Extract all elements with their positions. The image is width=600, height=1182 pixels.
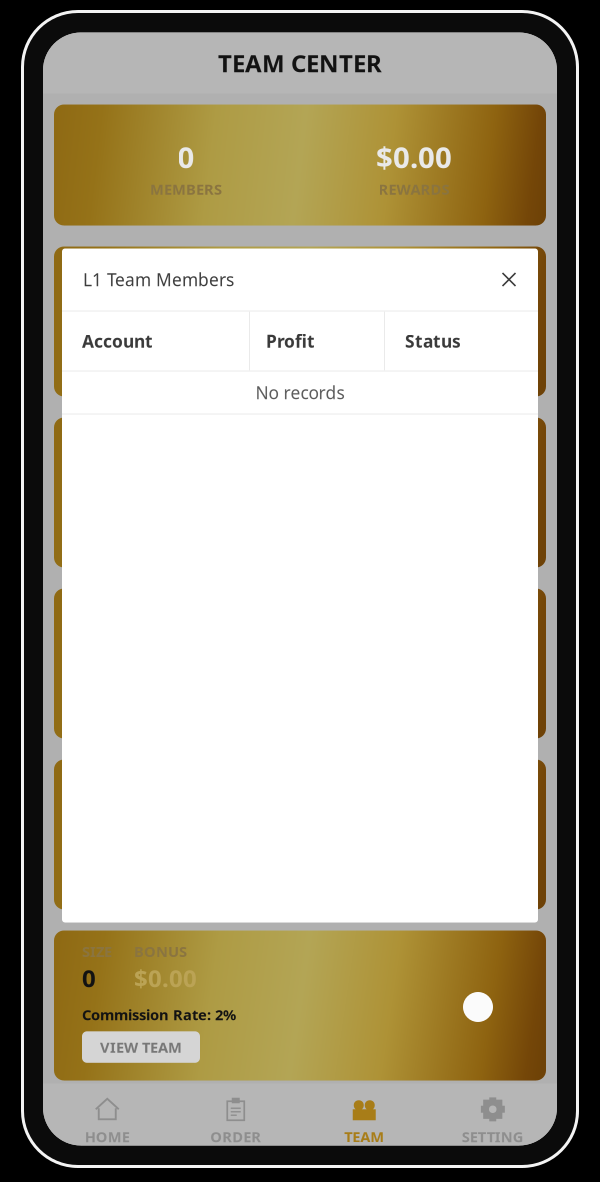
staticText: HOME <box>85 1127 130 1146</box>
staticText: SETTING <box>462 1127 524 1146</box>
staticText: TEAM CENTER <box>218 47 382 79</box>
staticText: VIEW TEAM <box>100 1037 182 1057</box>
button[interactable]: Close <box>491 261 527 297</box>
staticText: BONUS <box>134 257 187 277</box>
staticText: TEAM <box>344 1127 384 1146</box>
staticText: BONUS <box>134 941 187 961</box>
staticText: MEMBERS <box>150 179 222 199</box>
staticText: $0.00 <box>134 962 197 994</box>
staticText: Profit <box>266 329 315 352</box>
staticText: 0 <box>82 962 96 994</box>
staticText: Status <box>405 329 461 352</box>
staticText: Account <box>82 329 153 352</box>
staticText: Commission Rate: 2% <box>82 1005 236 1024</box>
staticText: $0.00 <box>376 137 452 176</box>
staticText: ORDER <box>210 1127 261 1146</box>
staticText: VIEW TEAM <box>100 353 182 373</box>
staticText: 0 <box>82 278 96 310</box>
staticText: 0 <box>177 137 194 176</box>
staticText: No records <box>255 381 344 404</box>
button[interactable]: VIEW TEAM <box>82 347 200 379</box>
staticText: L1 Team Members <box>83 268 234 291</box>
staticText: $0.00 <box>134 278 197 310</box>
button[interactable]: ORDER <box>171 1083 300 1145</box>
button[interactable]: SETTING <box>428 1083 557 1145</box>
staticText: Commission Rate: 2% <box>82 321 236 340</box>
staticText: SIZE <box>82 257 112 277</box>
staticText: SIZE <box>82 941 112 961</box>
staticText: REWARDS <box>378 179 449 199</box>
button[interactable]: TEAM <box>300 1083 428 1145</box>
button[interactable]: HOME <box>43 1083 171 1145</box>
button[interactable]: VIEW TEAM <box>82 1031 200 1063</box>
